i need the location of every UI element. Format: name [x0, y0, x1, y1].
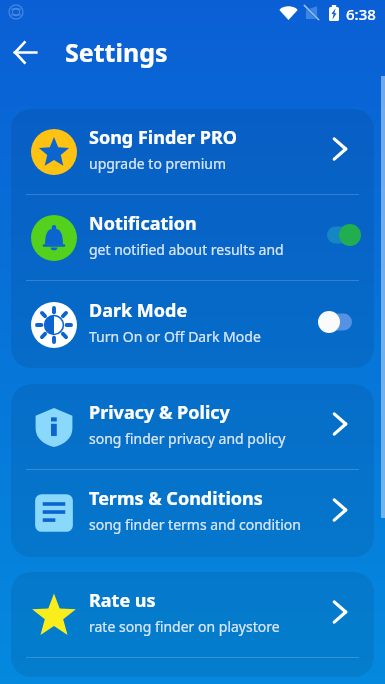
- button[interactable]: Open: [316, 129, 363, 169]
- staticText: Terms & Conditions: [89, 486, 263, 511]
- button[interactable]: Open: [316, 490, 363, 530]
- staticText: Settings: [65, 35, 168, 69]
- button[interactable]: Privacy & Policy: [11, 384, 374, 470]
- button[interactable]: Rate us: [11, 572, 374, 658]
- staticText: song finder terms and condition: [89, 515, 301, 534]
- staticText: Dark Mode: [89, 298, 188, 323]
- staticText: Notification: [89, 211, 197, 236]
- button[interactable]: Toggle on: [316, 215, 363, 255]
- staticText: rate song finder on playstore: [89, 617, 280, 636]
- staticText: Turn On or Off Dark Mode: [89, 327, 261, 346]
- staticText: upgrade to premium: [89, 154, 226, 173]
- staticText: Privacy & Policy: [89, 400, 230, 425]
- staticText: 6:38: [346, 4, 376, 24]
- button[interactable]: Open: [316, 404, 363, 444]
- button[interactable]: Back: [2, 29, 48, 75]
- button[interactable]: Song Finder PRO: [11, 109, 374, 195]
- staticText: song finder privacy and policy: [89, 429, 286, 448]
- button[interactable]: Dark Mode: [11, 282, 374, 368]
- button[interactable]: Open: [316, 592, 363, 632]
- button[interactable]: Notification: [11, 195, 374, 281]
- staticText: Rate us: [89, 588, 156, 613]
- staticText: get notified about results and: [89, 240, 284, 259]
- button[interactable]: Terms & Conditions: [11, 470, 374, 556]
- staticText: Song Finder PRO: [89, 125, 237, 150]
- button[interactable]: Toggle off: [316, 302, 363, 342]
